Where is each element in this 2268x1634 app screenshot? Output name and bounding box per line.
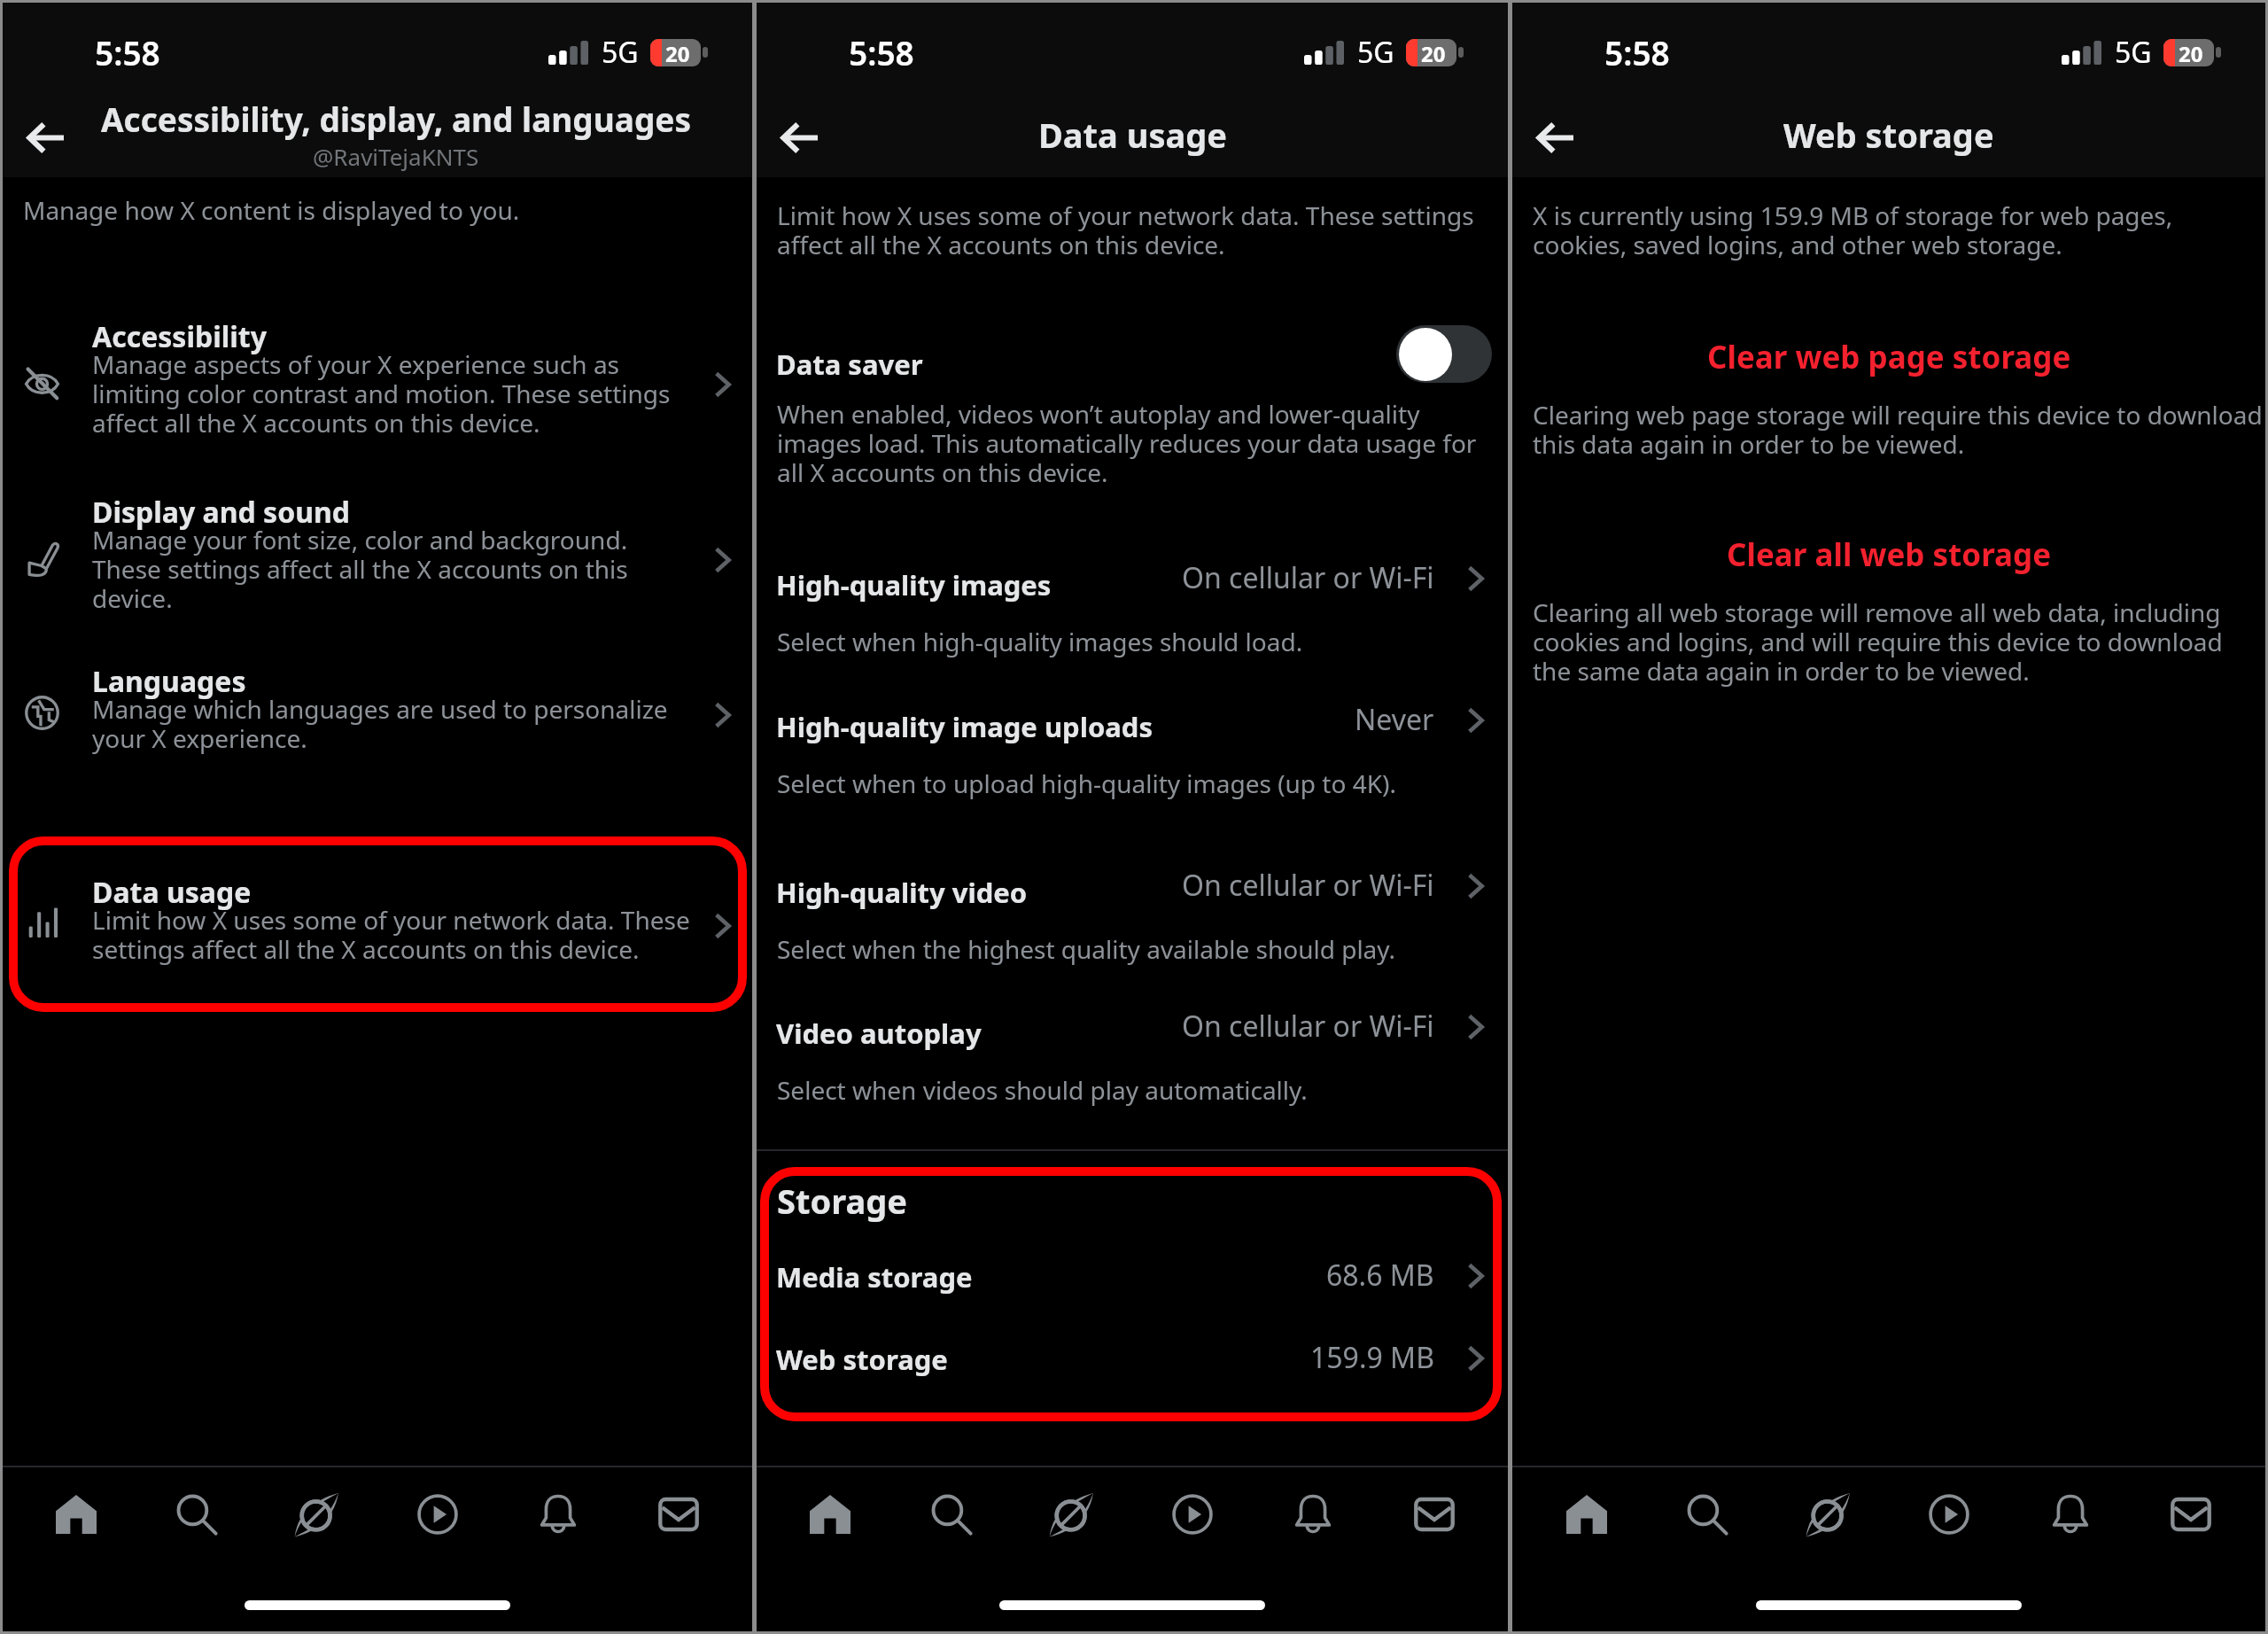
staticText: Display and sound: [92, 493, 350, 532]
staticText: Data saver: [776, 346, 1393, 383]
button[interactable]: Clear all web storage: [1512, 535, 2265, 574]
button[interactable]: Data usage: [3, 882, 752, 966]
button[interactable]: Messages: [1387, 1467, 1481, 1561]
staticText: X is currently using 159.9 MB of storage…: [1533, 198, 2173, 261]
button[interactable]: Back: [1512, 92, 1597, 177]
staticText: 20: [1421, 39, 1446, 66]
button[interactable]: Media storage: [757, 1257, 1508, 1296]
staticText: High-quality images: [776, 566, 1052, 603]
button[interactable]: Grok: [270, 1467, 364, 1561]
button[interactable]: Display and sound: [3, 502, 752, 615]
button[interactable]: Accessibility: [3, 326, 752, 440]
staticText: On cellular or Wi-Fi: [1182, 866, 1434, 905]
staticText: 20: [2179, 39, 2203, 66]
button[interactable]: Video autoplay: [757, 1014, 1508, 1107]
staticText: 5G: [602, 33, 639, 72]
staticText: On cellular or Wi-Fi: [1182, 558, 1434, 597]
button[interactable]: High-quality images: [757, 565, 1508, 658]
staticText: Select when to upload high-quality image…: [777, 766, 1396, 800]
staticText: Never: [1355, 700, 1434, 739]
button[interactable]: Back: [757, 92, 842, 177]
staticText: Clear web page storage: [1707, 336, 2071, 378]
staticText: 68.6 MB: [1326, 1256, 1434, 1295]
staticText: Select when the highest quality availabl…: [777, 932, 1395, 966]
button[interactable]: Notifications: [511, 1467, 605, 1561]
button[interactable]: Languages: [3, 671, 752, 755]
button[interactable]: Notifications: [1266, 1467, 1360, 1561]
button[interactable]: Messages: [2144, 1467, 2238, 1561]
staticText: 159.9 MB: [1310, 1338, 1434, 1377]
staticText: Manage your font size, color and backgro…: [92, 523, 628, 615]
staticText: Web storage: [776, 1341, 948, 1378]
staticText: Languages: [92, 662, 246, 701]
staticText: 5G: [1357, 33, 1394, 72]
staticText: Clear all web storage: [1727, 533, 2052, 576]
staticText: Manage how X content is displayed to you…: [23, 193, 520, 227]
staticText: Limit how X uses some of your network da…: [777, 198, 1474, 261]
button[interactable]: Home: [1540, 1467, 1634, 1561]
button[interactable]: Video: [1902, 1467, 1996, 1561]
button[interactable]: Data saver: [757, 335, 1508, 393]
staticText: Accessibility: [92, 317, 268, 356]
staticText: 5:58: [1604, 30, 1670, 74]
button[interactable]: Home: [783, 1467, 877, 1561]
staticText: Manage which languages are used to perso…: [92, 692, 668, 755]
staticText: Limit how X uses some of your network da…: [92, 903, 690, 966]
staticText: High-quality video: [776, 874, 1028, 911]
staticText: When enabled, videos won’t autoplay and …: [777, 397, 1477, 489]
staticText: 5:58: [95, 30, 160, 74]
staticText: Video autoplay: [776, 1015, 982, 1052]
button[interactable]: Home: [29, 1467, 123, 1561]
staticText: Web storage: [1783, 112, 1994, 158]
staticText: Clearing web page storage will require t…: [1533, 398, 2263, 461]
button[interactable]: Messages: [632, 1467, 726, 1561]
button[interactable]: Web storage: [757, 1340, 1508, 1379]
staticText: 20: [665, 39, 690, 66]
staticText: Media storage: [776, 1258, 973, 1296]
button[interactable]: Search: [905, 1467, 998, 1561]
staticText: Accessibility, display, and languages: [101, 97, 691, 141]
staticText: Clearing all web storage will remove all…: [1533, 595, 2223, 688]
button[interactable]: High-quality video: [757, 873, 1508, 966]
button[interactable]: Clear web page storage: [1512, 338, 2265, 377]
staticText: @RaviTejaKNTS: [313, 141, 479, 172]
button[interactable]: Video: [1146, 1467, 1239, 1561]
staticText: On cellular or Wi-Fi: [1182, 1007, 1434, 1046]
button[interactable]: Video: [391, 1467, 485, 1561]
button[interactable]: Grok: [1782, 1467, 1876, 1561]
staticText: 5:58: [849, 30, 914, 74]
staticText: Storage: [777, 1178, 907, 1224]
staticText: Data usage: [92, 873, 252, 912]
staticText: Manage aspects of your X experience such…: [92, 347, 671, 440]
button[interactable]: Search: [150, 1467, 244, 1561]
button[interactable]: Back: [3, 92, 88, 177]
button[interactable]: Grok: [1025, 1467, 1119, 1561]
staticText: High-quality image uploads: [776, 708, 1153, 745]
staticText: Data usage: [1038, 112, 1227, 158]
button[interactable]: Notifications: [2023, 1467, 2117, 1561]
staticText: 5G: [2115, 33, 2152, 72]
button[interactable]: High-quality image uploads: [757, 707, 1508, 800]
staticText: Select when high-quality images should l…: [777, 625, 1303, 658]
staticText: Select when videos should play automatic…: [777, 1073, 1308, 1107]
button[interactable]: Search: [1660, 1467, 1754, 1561]
